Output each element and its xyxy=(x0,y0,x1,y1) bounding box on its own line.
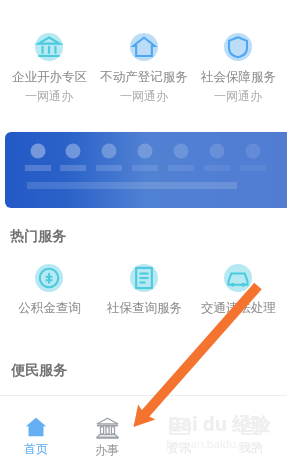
button[interactable]: 交通违法处理 xyxy=(193,264,283,316)
button[interactable]: 便民服务 xyxy=(11,362,67,380)
button[interactable]: 首页 xyxy=(0,416,71,461)
staticText: 公积金查询 xyxy=(18,300,81,316)
staticText: 社保查询服务 xyxy=(107,300,182,316)
button[interactable]: 办事 xyxy=(71,416,143,461)
button[interactable]: 社保查询服务 xyxy=(99,264,189,316)
staticText: jingyan.baidu.com xyxy=(166,436,262,451)
button[interactable]: 我的 xyxy=(215,416,287,461)
button[interactable]: 公积金查询 xyxy=(4,264,94,316)
staticText: 企业开办专区 xyxy=(12,69,87,85)
staticText: Bai du 经验 xyxy=(168,411,270,437)
staticText: 一网通办 xyxy=(214,88,262,103)
button[interactable]: 社会保障服务 xyxy=(193,33,283,103)
staticText: 办事 xyxy=(95,442,119,457)
button[interactable]: 企业开办专区 xyxy=(4,33,94,103)
staticText: 一网通办 xyxy=(120,88,168,103)
button[interactable]: 资讯 xyxy=(143,416,215,461)
button[interactable] xyxy=(5,132,287,208)
button[interactable]: 热门服务 xyxy=(10,228,66,246)
button[interactable]: 不动产登记服务 xyxy=(99,33,189,103)
staticText: 不动产登记服务 xyxy=(100,69,188,85)
staticText: 交通违法处理 xyxy=(201,300,276,316)
staticText: 社会保障服务 xyxy=(201,69,276,85)
staticText: 资讯 xyxy=(167,440,191,455)
staticText: 我的 xyxy=(239,440,263,455)
staticText: 一网通办 xyxy=(25,88,73,103)
staticText: 首页 xyxy=(24,441,48,456)
